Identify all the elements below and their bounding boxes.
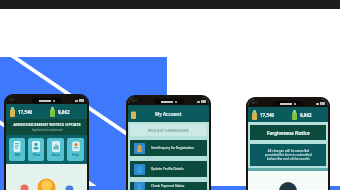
button[interactable]: Check Payment Status: [130, 182, 207, 190]
staticText: Send Inquiry for Registration: [151, 146, 195, 150]
staticText: 17,540: [260, 112, 275, 118]
staticText: tap here to read more: [32, 128, 63, 132]
staticText: 17,540: [18, 109, 33, 115]
staticText: Bill: [15, 153, 20, 157]
button[interactable]: REQUEST SUBMISSIONS: [130, 124, 207, 136]
button[interactable]: 17,540: [248, 107, 288, 122]
button[interactable]: Send Inquiry for Registration: [130, 140, 207, 156]
staticText: All charges will be cancelled provided t…: [265, 149, 312, 161]
button[interactable]: 9,862: [46, 104, 87, 119]
staticText: Update Profile Details: [151, 167, 184, 171]
staticText: 9,862: [58, 109, 70, 115]
staticText: ANNOUNCEMENT NOTICE UPDATE: [13, 122, 81, 127]
staticText: Data: [52, 153, 60, 157]
staticText: Forgiveness Notice: [267, 130, 310, 136]
button[interactable]: Update Profile Details: [130, 161, 207, 177]
staticText: 9,862: [300, 112, 312, 118]
staticText: 9:41: [131, 99, 137, 103]
button[interactable]: 9,862: [288, 107, 328, 122]
staticText: 9:41: [251, 101, 257, 105]
staticText: My Account: [155, 111, 182, 117]
button[interactable]: 17,540: [6, 104, 46, 119]
button[interactable]: Help: [67, 138, 84, 161]
staticText: Help: [72, 153, 80, 157]
button[interactable]: Forgiveness Notice: [250, 125, 326, 140]
staticText: Plan: [33, 153, 40, 157]
button[interactable]: Data: [47, 138, 64, 161]
button[interactable]: Bill: [9, 138, 25, 161]
staticText: 9:41: [9, 98, 15, 102]
staticText: Check Payment Status: [151, 184, 185, 188]
staticText: REQUEST SUBMISSIONS: [148, 128, 189, 133]
button[interactable]: Plan: [28, 138, 44, 161]
